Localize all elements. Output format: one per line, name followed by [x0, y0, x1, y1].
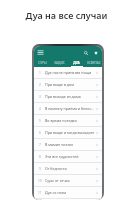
button[interactable]: 5	[34, 115, 102, 126]
staticText: 6	[39, 131, 41, 135]
button[interactable]: 8	[34, 151, 102, 162]
staticText: 9	[39, 167, 41, 171]
button[interactable]: 11	[34, 187, 102, 198]
button[interactable]: 10	[34, 175, 102, 186]
staticText: 1	[39, 71, 41, 75]
staticText: В мамин платок	[45, 142, 95, 147]
staticText: ХАДИС	[54, 61, 65, 65]
button[interactable]: ХАДИС	[51, 58, 68, 67]
staticText: Дуа со сном	[45, 190, 95, 195]
staticText: 3	[39, 95, 41, 99]
staticText: 4	[39, 107, 41, 111]
staticText: 10	[38, 179, 42, 183]
button[interactable]: КОМПАС	[85, 58, 102, 67]
staticText: От бедности	[45, 166, 95, 171]
staticText: 12	[38, 199, 42, 200]
staticText: 11	[38, 191, 42, 195]
staticText: СУРЫ	[38, 61, 47, 65]
staticText: При выходе из дома	[45, 94, 95, 99]
staticText: При входе и когда выходите	[45, 130, 95, 135]
button[interactable]: 4	[34, 103, 102, 114]
button[interactable]: 2	[34, 79, 102, 90]
staticText: Эти все трудностей	[45, 154, 95, 159]
staticText: 2	[39, 83, 41, 87]
staticText: 5	[39, 119, 41, 123]
button[interactable]: 12	[34, 199, 102, 200]
button[interactable]: 9	[34, 163, 102, 174]
staticText: 7	[39, 143, 41, 147]
button[interactable]: 6	[34, 127, 102, 138]
button[interactable]: 7	[34, 139, 102, 150]
staticText: КОМПАС	[87, 61, 101, 65]
staticText: Во время поездки	[45, 118, 95, 123]
button[interactable]: ДУА	[68, 58, 85, 67]
button[interactable]: 3	[34, 91, 102, 102]
staticText: 8	[39, 155, 41, 159]
button[interactable]: Menu	[37, 49, 44, 56]
staticText: В комнату приёма и белоснежка	[45, 106, 95, 111]
button[interactable]: Search	[82, 49, 89, 56]
staticText: Дуа после принятия пищи	[45, 70, 95, 75]
staticText: Дуа на все случаи	[0, 9, 133, 21]
staticText: ДУА	[73, 61, 80, 65]
staticText: При входе в дом	[45, 82, 95, 87]
staticText: Суры от отчая	[45, 178, 95, 183]
button[interactable]: 1	[34, 67, 102, 78]
button[interactable]: СУРЫ	[34, 58, 51, 67]
button[interactable]: Favorites	[92, 49, 99, 56]
